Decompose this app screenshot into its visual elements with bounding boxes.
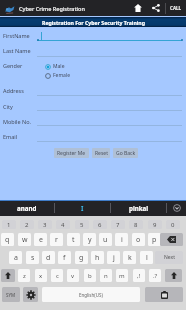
button[interactable]: Backspace bbox=[160, 233, 183, 246]
staticText: r bbox=[55, 235, 58, 245]
button[interactable]: Female bbox=[45, 72, 71, 79]
staticText: pinkal bbox=[129, 204, 149, 212]
button[interactable]: Shift bbox=[165, 269, 182, 282]
button[interactable]: anand bbox=[0, 200, 54, 216]
staticText: g bbox=[79, 253, 84, 263]
staticText: I bbox=[81, 204, 84, 212]
staticText: j bbox=[113, 253, 115, 263]
button[interactable]: .? bbox=[149, 269, 161, 282]
button[interactable]: 5 bbox=[75, 220, 89, 229]
staticText: Cyber Crime Registration bbox=[19, 5, 85, 12]
button[interactable]: l bbox=[140, 251, 153, 264]
button[interactable]: SYM bbox=[2, 287, 20, 302]
button[interactable]: d bbox=[42, 251, 55, 264]
staticText: 3 bbox=[43, 221, 47, 229]
staticText: 0 bbox=[171, 221, 175, 229]
button[interactable]: z bbox=[18, 269, 30, 282]
button[interactable]: h bbox=[91, 251, 104, 264]
staticText: 1 bbox=[7, 221, 11, 229]
staticText: s bbox=[31, 253, 35, 263]
staticText: Gender bbox=[3, 62, 23, 69]
button[interactable]: m bbox=[116, 269, 128, 282]
button[interactable]: Share bbox=[148, 0, 163, 16]
button[interactable]: I bbox=[55, 200, 110, 216]
staticText: q bbox=[5, 235, 10, 245]
staticText: Male bbox=[53, 63, 65, 70]
button[interactable]: 0 bbox=[166, 220, 180, 229]
staticText: y bbox=[88, 235, 92, 245]
staticText: n bbox=[104, 272, 108, 280]
button[interactable]: g bbox=[75, 251, 88, 264]
staticText: Next bbox=[164, 254, 175, 261]
staticText: c bbox=[56, 272, 59, 280]
button[interactable]: 9 bbox=[148, 220, 162, 229]
button[interactable]: 4 bbox=[56, 220, 70, 229]
button[interactable]: e bbox=[34, 233, 47, 246]
button[interactable]: b bbox=[84, 269, 96, 282]
button[interactable]: 3 bbox=[38, 220, 52, 229]
button[interactable]: 8 bbox=[129, 220, 143, 229]
button[interactable]: Shift bbox=[1, 269, 15, 282]
button[interactable]: Enter bbox=[145, 287, 183, 302]
staticText: 4 bbox=[61, 221, 65, 229]
button[interactable]: a bbox=[9, 251, 22, 264]
button[interactable]: o bbox=[132, 233, 145, 246]
button[interactable]: pinkal bbox=[111, 200, 167, 216]
button[interactable]: k bbox=[123, 251, 136, 264]
button[interactable]: 7 bbox=[111, 220, 125, 229]
button[interactable]: u bbox=[99, 233, 112, 246]
button[interactable]: CALL bbox=[166, 0, 186, 16]
staticText: z bbox=[23, 272, 26, 280]
button[interactable]: j bbox=[107, 251, 120, 264]
staticText: f bbox=[63, 253, 66, 263]
button[interactable]: 1 bbox=[2, 220, 16, 229]
button[interactable]: Settings bbox=[23, 287, 38, 302]
staticText: Address bbox=[3, 87, 24, 94]
staticText: v bbox=[71, 272, 75, 280]
staticText: 8 bbox=[134, 221, 138, 229]
staticText: a bbox=[14, 253, 18, 263]
button[interactable]: i bbox=[115, 233, 128, 246]
staticText: 6 bbox=[98, 221, 102, 229]
button[interactable]: w bbox=[18, 233, 31, 246]
button[interactable]: English(US) bbox=[42, 287, 140, 302]
button[interactable]: n bbox=[100, 269, 112, 282]
button[interactable]: Next bbox=[155, 251, 183, 264]
button[interactable]: Male bbox=[45, 63, 65, 70]
button[interactable]: x bbox=[35, 269, 47, 282]
staticText: ,! bbox=[137, 272, 141, 280]
staticText: Registration For Cyber Security Training bbox=[42, 19, 145, 26]
button[interactable]: p bbox=[148, 233, 161, 246]
staticText: Mobile No. bbox=[3, 118, 32, 125]
staticText: 7 bbox=[116, 221, 120, 229]
button[interactable]: t bbox=[67, 233, 80, 246]
staticText: h bbox=[95, 253, 100, 263]
button[interactable]: c bbox=[51, 269, 63, 282]
staticText: 5 bbox=[80, 221, 84, 229]
button[interactable]: Register Me bbox=[54, 148, 89, 158]
button[interactable]: y bbox=[83, 233, 96, 246]
staticText: .? bbox=[153, 272, 158, 280]
staticText: 2 bbox=[25, 221, 29, 229]
staticText: o bbox=[136, 235, 141, 245]
button[interactable]: v bbox=[67, 269, 79, 282]
button[interactable]: s bbox=[26, 251, 39, 264]
button[interactable]: Go Back bbox=[113, 148, 138, 158]
button[interactable]: ,! bbox=[133, 269, 145, 282]
staticText: t bbox=[72, 235, 75, 245]
button[interactable]: More suggestions bbox=[167, 200, 186, 216]
button[interactable]: 2 bbox=[20, 220, 34, 229]
staticText: anand bbox=[17, 204, 37, 212]
button[interactable]: q bbox=[1, 233, 14, 246]
button[interactable]: Reset bbox=[92, 148, 110, 158]
button[interactable]: Home bbox=[130, 0, 145, 16]
button[interactable]: 6 bbox=[93, 220, 107, 229]
staticText: x bbox=[39, 272, 43, 280]
staticText: l bbox=[146, 253, 148, 263]
button[interactable]: f bbox=[58, 251, 71, 264]
button[interactable]: r bbox=[50, 233, 63, 246]
staticText: w bbox=[22, 235, 28, 245]
staticText: m bbox=[119, 272, 125, 280]
staticText: u bbox=[103, 235, 108, 245]
staticText: Register Me bbox=[57, 150, 86, 157]
